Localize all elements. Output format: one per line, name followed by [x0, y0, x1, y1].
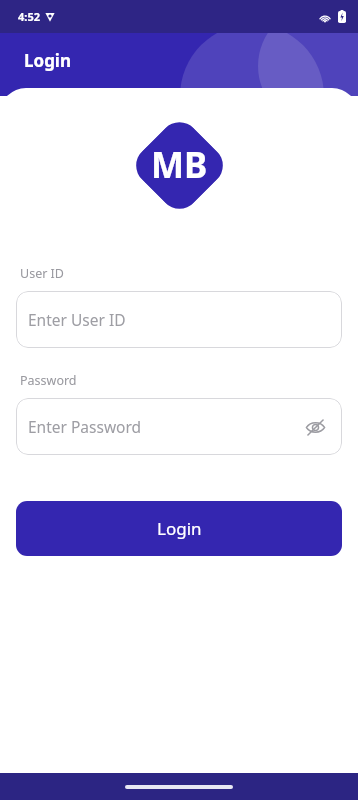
staticText: Login — [24, 49, 72, 72]
button[interactable]: Login — [16, 501, 342, 556]
staticText: Password — [20, 372, 77, 389]
button[interactable]: Enter Password — [16, 398, 342, 455]
staticText: 4:52 — [18, 9, 40, 24]
staticText: Enter User ID — [28, 309, 126, 330]
staticText: Login — [157, 517, 202, 540]
staticText: MB — [151, 141, 208, 189]
button[interactable]: Show password — [302, 414, 328, 440]
staticText: User ID — [20, 265, 64, 282]
staticText: Enter Password — [28, 416, 142, 437]
button[interactable]: Enter User ID — [16, 291, 342, 348]
